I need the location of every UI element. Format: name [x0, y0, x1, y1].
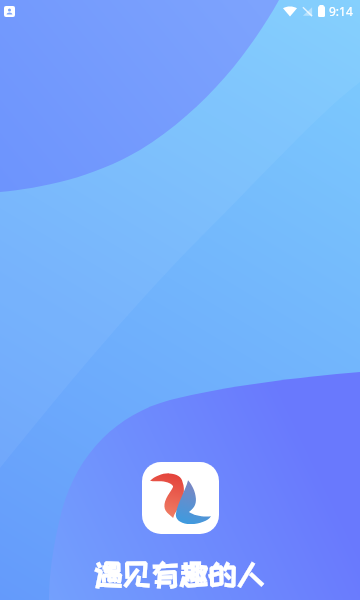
- staticText: 9:14: [329, 3, 353, 19]
- button[interactable]: App logo: [142, 462, 219, 534]
- staticText: 遇见有趣的人: [94, 559, 266, 590]
